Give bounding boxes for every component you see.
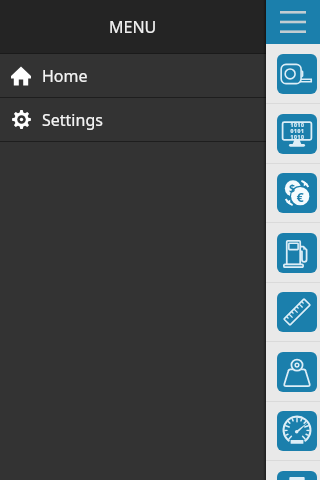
staticText: Settings	[42, 109, 103, 131]
button[interactable]: Open navigation menu	[266, 0, 320, 44]
staticText: 1010 0101 1010	[290, 122, 304, 140]
button[interactable]: Volume converter	[266, 461, 320, 480]
staticText: €	[296, 188, 304, 205]
staticText: MENU	[109, 16, 157, 38]
button[interactable]: Currency converter	[266, 163, 320, 223]
button[interactable]: Settings	[0, 98, 266, 141]
button[interactable]: Weight converter	[266, 342, 320, 402]
button[interactable]: Speed converter	[266, 401, 320, 461]
button[interactable]: Length converter	[266, 282, 320, 342]
button[interactable]: Binary converter	[266, 104, 320, 164]
button[interactable]: Measuring tape	[266, 44, 320, 104]
staticText: $	[289, 180, 296, 195]
staticText: Home	[42, 65, 88, 87]
button[interactable]: Home	[0, 54, 266, 97]
button[interactable]: Fuel consumption	[266, 223, 320, 283]
